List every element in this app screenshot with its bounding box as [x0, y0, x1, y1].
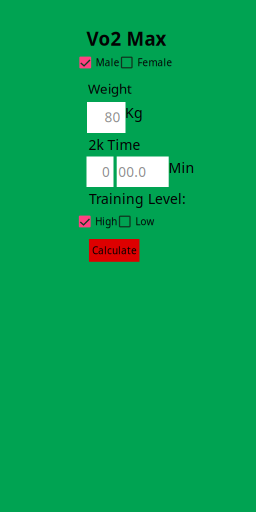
- staticText: Low: [135, 215, 154, 228]
- staticText: Vo2 Max: [86, 26, 166, 51]
- button[interactable]: Male: [79, 55, 120, 69]
- staticText: Female: [137, 56, 172, 69]
- button[interactable]: Female: [121, 55, 172, 69]
- staticText: High: [95, 215, 117, 228]
- button[interactable]: Low: [119, 214, 154, 228]
- staticText: Calculate: [92, 244, 137, 257]
- staticText: 00.0: [118, 162, 146, 181]
- staticText: Male: [96, 56, 120, 69]
- staticText: Training Level:: [89, 189, 186, 208]
- staticText: Weight: [88, 79, 132, 98]
- staticText: Min: [168, 158, 194, 177]
- staticText: 80: [104, 108, 120, 126]
- staticText: 2k Time: [88, 135, 140, 154]
- staticText: 0: [102, 162, 110, 181]
- button[interactable]: High: [79, 214, 117, 228]
- button[interactable]: Calculate: [89, 239, 139, 262]
- staticText: Kg: [125, 103, 143, 122]
